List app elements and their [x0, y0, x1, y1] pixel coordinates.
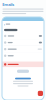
staticText: ‹	[4, 21, 5, 27]
button[interactable]	[2, 61, 44, 67]
button[interactable]	[2, 39, 44, 46]
staticText: Emails	[2, 2, 14, 7]
button[interactable]: New message	[38, 91, 43, 96]
button[interactable]	[2, 33, 44, 39]
button[interactable]	[2, 53, 44, 59]
button[interactable]: Back	[4, 22, 10, 26]
button[interactable]	[2, 46, 44, 52]
